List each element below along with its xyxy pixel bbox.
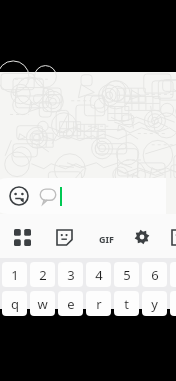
- button[interactable]: t: [114, 291, 139, 316]
- staticText: 5: [123, 266, 131, 284]
- staticText: GIF: [99, 233, 114, 245]
- staticText: 6: [151, 266, 159, 284]
- button[interactable]: 4: [86, 262, 111, 287]
- staticText: r: [96, 295, 102, 313]
- button[interactable]: Stickers: [8, 185, 30, 207]
- button[interactable]: w: [30, 291, 55, 316]
- staticText: w: [37, 295, 48, 313]
- button[interactable]: Sticker: [52, 225, 76, 249]
- button[interactable]: 6: [142, 262, 167, 287]
- button[interactable]: y: [142, 291, 167, 316]
- staticText: y: [151, 295, 158, 313]
- button[interactable]: 1: [2, 262, 27, 287]
- button[interactable]: GIF: [92, 225, 120, 253]
- staticText: q: [11, 295, 19, 313]
- button[interactable]: 3: [58, 262, 83, 287]
- button[interactable]: Apps: [10, 225, 34, 249]
- button[interactable]: 2: [30, 262, 55, 287]
- staticText: 1: [11, 266, 19, 284]
- staticText: 2: [39, 266, 47, 284]
- staticText: 3: [67, 266, 75, 284]
- button[interactable]: u: [170, 291, 176, 316]
- button[interactable]: e: [58, 291, 83, 316]
- staticText: e: [67, 295, 75, 313]
- staticText: 4: [95, 266, 103, 284]
- staticText: t: [124, 295, 129, 313]
- button[interactable]: q: [2, 291, 27, 316]
- button[interactable]: More: [167, 225, 176, 249]
- button[interactable]: r: [86, 291, 111, 316]
- button[interactable]: Settings: [130, 225, 154, 249]
- button[interactable]: Message: [38, 186, 58, 206]
- button[interactable]: 5: [114, 262, 139, 287]
- button[interactable]: Stickers: [0, 178, 166, 214]
